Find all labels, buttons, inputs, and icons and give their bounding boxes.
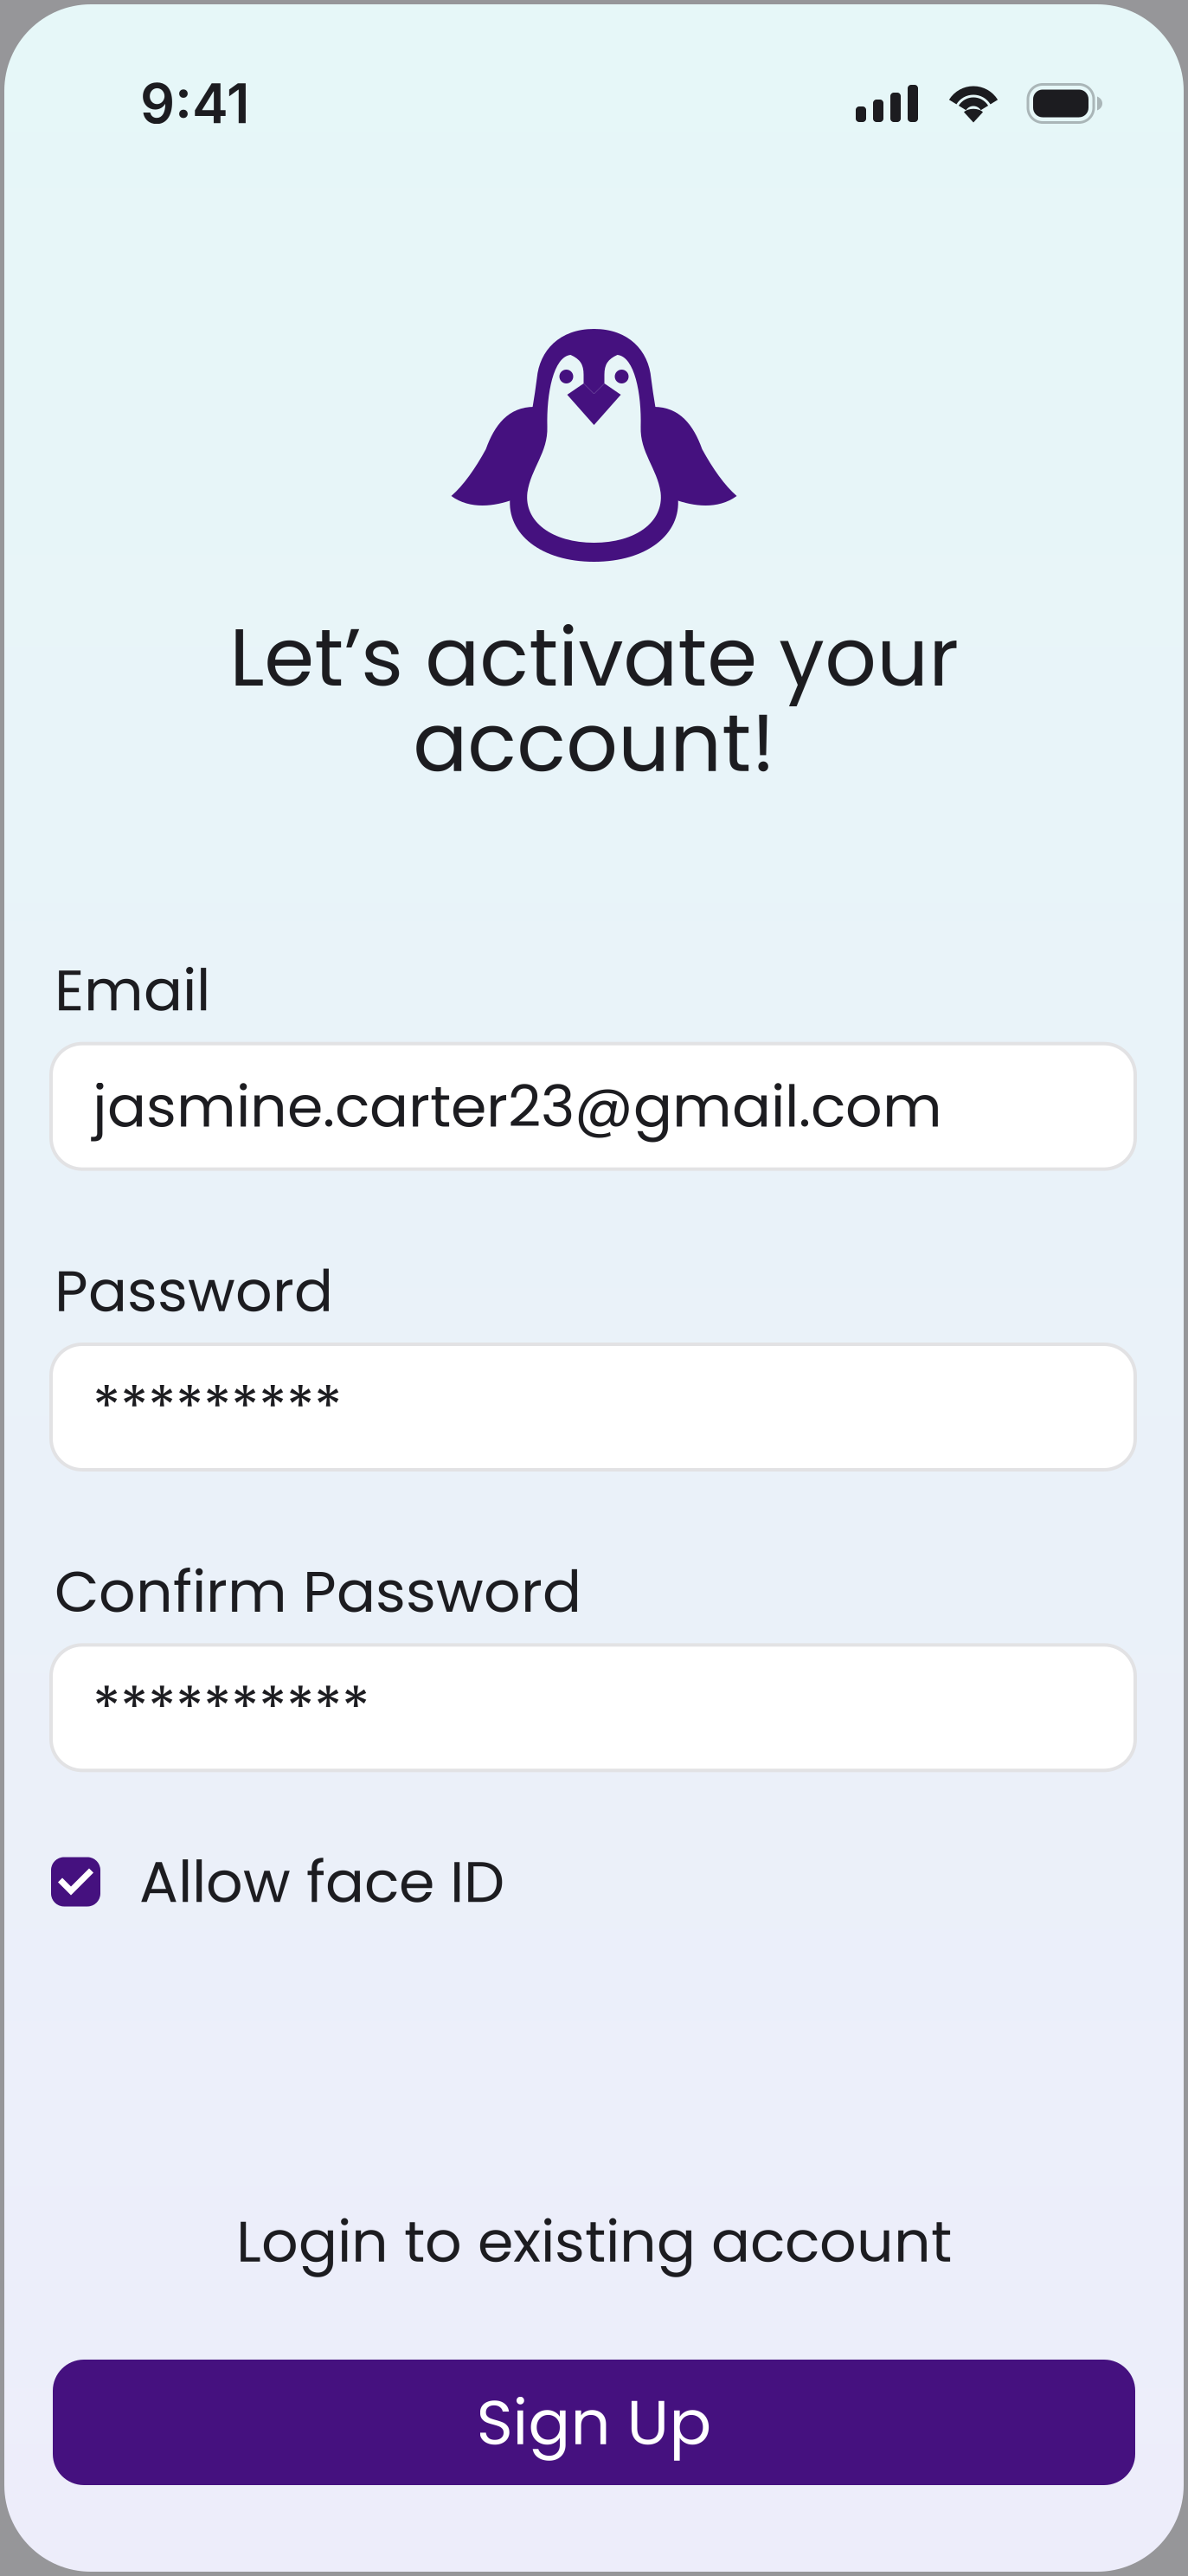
staticText: Email: [55, 950, 210, 1031]
staticText: 9:41: [140, 71, 249, 136]
staticText: Password: [55, 1251, 333, 1331]
staticText: Login to existing account: [236, 2201, 952, 2282]
button[interactable]: jasmine.carter23@gmail.com: [51, 1044, 1135, 1169]
staticText: *********: [93, 1367, 342, 1447]
button[interactable]: Login to existing account: [4, 2192, 1184, 2290]
staticText: jasmine.carter23@gmail.com: [93, 1066, 942, 1147]
button[interactable]: *********: [51, 1344, 1135, 1470]
staticText: **********: [93, 1667, 369, 1748]
button[interactable]: Sign Up: [53, 2360, 1135, 2485]
staticText: Sign Up: [476, 2379, 712, 2466]
button[interactable]: Allow face ID: [51, 1841, 1135, 1922]
staticText: Allow face ID: [139, 1841, 504, 1922]
staticText: Let’s activate your account!: [229, 601, 959, 799]
staticText: Confirm Password: [55, 1551, 581, 1632]
button[interactable]: **********: [51, 1645, 1135, 1770]
